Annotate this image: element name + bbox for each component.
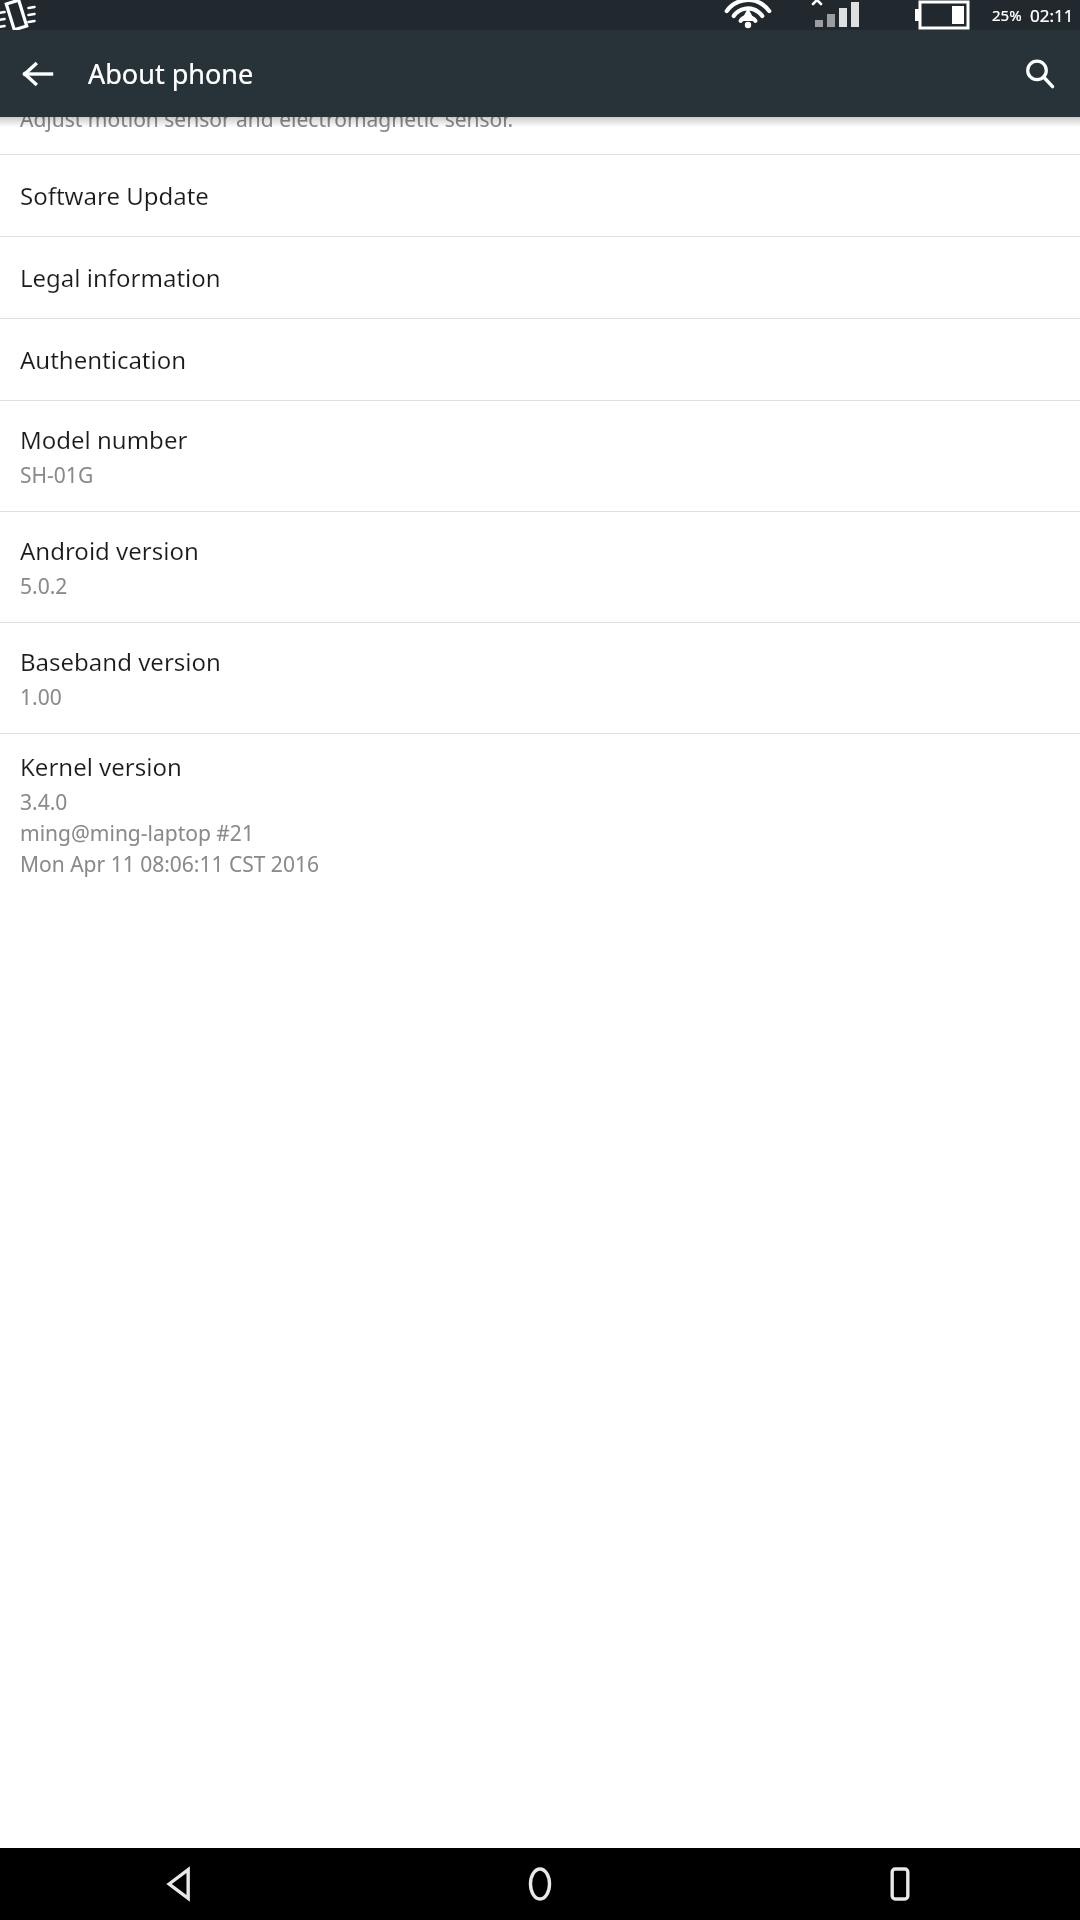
button[interactable]: Adjust motion sensor and electromagnetic… <box>0 117 1080 154</box>
button[interactable]: Software Update <box>0 155 1080 236</box>
button[interactable]: Legal information <box>0 237 1080 318</box>
staticText: Authentication <box>20 343 187 376</box>
button[interactable]: Kernel version <box>0 734 1080 894</box>
staticText: Mon Apr 11 08:06:11 CST 2016 <box>20 850 319 879</box>
staticText: ming@ming-laptop #21 <box>20 819 254 848</box>
staticText: Kernel version <box>20 750 182 783</box>
staticText: 25% <box>992 5 1022 25</box>
staticText: Adjust motion sensor and electromagnetic… <box>20 117 514 134</box>
button[interactable]: Search <box>1012 46 1068 102</box>
staticText: Android version <box>20 534 199 567</box>
staticText: 5.0.2 <box>20 572 68 601</box>
button[interactable]: Home <box>360 1848 720 1920</box>
staticText: 3.4.0 <box>20 788 68 817</box>
button[interactable]: Back <box>10 46 66 102</box>
button[interactable]: Android version <box>0 512 1080 622</box>
button[interactable]: Back <box>0 1848 360 1920</box>
staticText: 02:11 <box>1030 4 1074 27</box>
staticText: Model number <box>20 423 188 456</box>
staticText: About phone <box>88 55 254 92</box>
staticText: Baseband version <box>20 645 221 678</box>
staticText: Legal information <box>20 261 221 294</box>
staticText: 1.00 <box>20 683 62 712</box>
button[interactable]: Authentication <box>0 319 1080 400</box>
staticText: SH-01G <box>20 461 94 490</box>
button[interactable]: Recent apps <box>720 1848 1080 1920</box>
staticText: Software Update <box>20 179 209 212</box>
button[interactable]: Model number <box>0 401 1080 511</box>
button[interactable]: Baseband version <box>0 623 1080 733</box>
